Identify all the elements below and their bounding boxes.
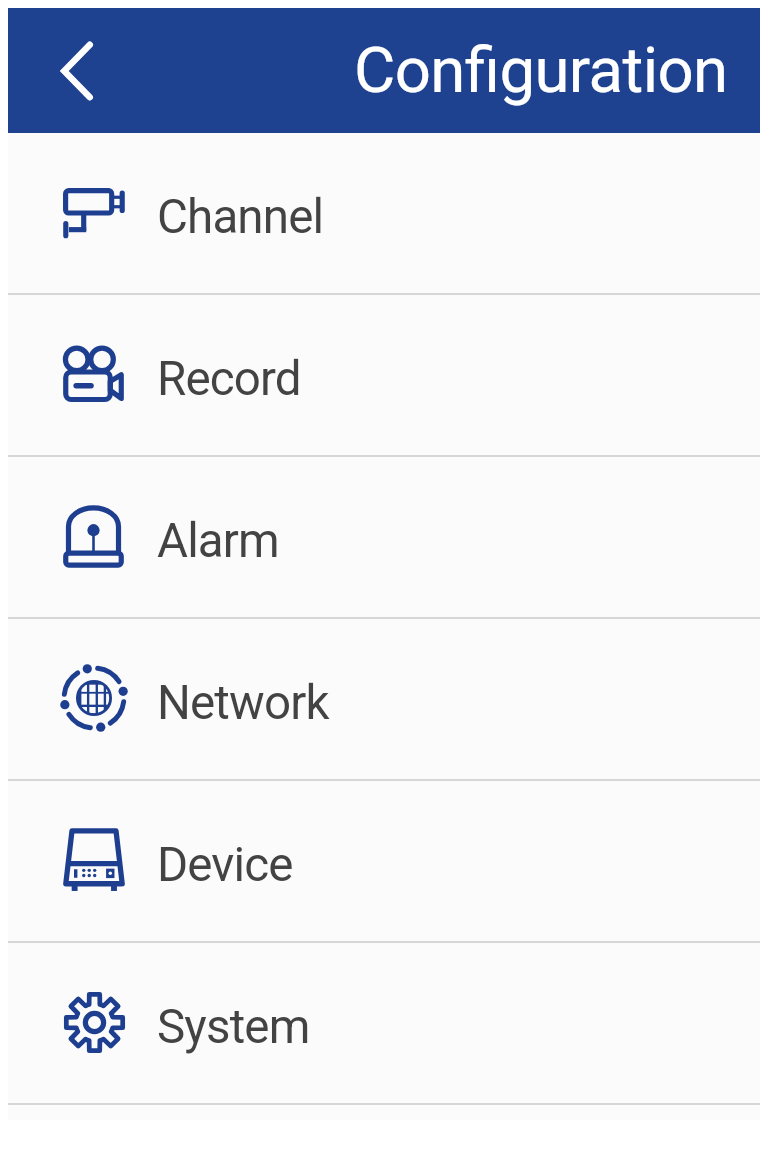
- button[interactable]: Channel: [8, 133, 760, 293]
- staticText: Device: [157, 837, 293, 893]
- staticText: Channel: [157, 189, 324, 245]
- staticText: Alarm: [157, 513, 279, 569]
- button[interactable]: Alarm: [8, 457, 760, 617]
- staticText: System: [157, 999, 310, 1055]
- staticText: Configuration: [354, 33, 728, 107]
- button[interactable]: Back: [43, 31, 123, 111]
- button[interactable]: System: [8, 943, 760, 1103]
- button[interactable]: Network: [8, 619, 760, 779]
- staticText: Network: [157, 675, 329, 731]
- button[interactable]: Record: [8, 295, 760, 455]
- staticText: Record: [157, 351, 301, 407]
- button[interactable]: Device: [8, 781, 760, 941]
